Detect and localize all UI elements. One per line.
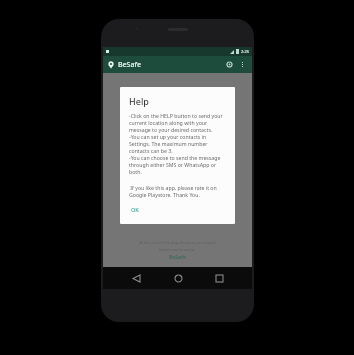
staticText: Help [129, 95, 149, 107]
staticText: If you like this app, please rate it on … [129, 184, 226, 198]
button[interactable]: OK [129, 205, 141, 214]
staticText: OK [131, 206, 139, 213]
button[interactable]: More options [236, 58, 249, 71]
button[interactable]: Home [169, 269, 187, 287]
button[interactable]: Recents [210, 269, 228, 287]
staticText: -Click on the HELP button to send your c… [129, 112, 226, 175]
staticText: BeSafe [169, 254, 186, 261]
button[interactable]: Settings [223, 58, 236, 71]
staticText: At the end of the day, the poor are simp… [139, 240, 216, 252]
staticText: 2:25 [241, 49, 249, 54]
button[interactable]: Back [127, 269, 145, 287]
staticText: BeSafe [118, 60, 141, 70]
